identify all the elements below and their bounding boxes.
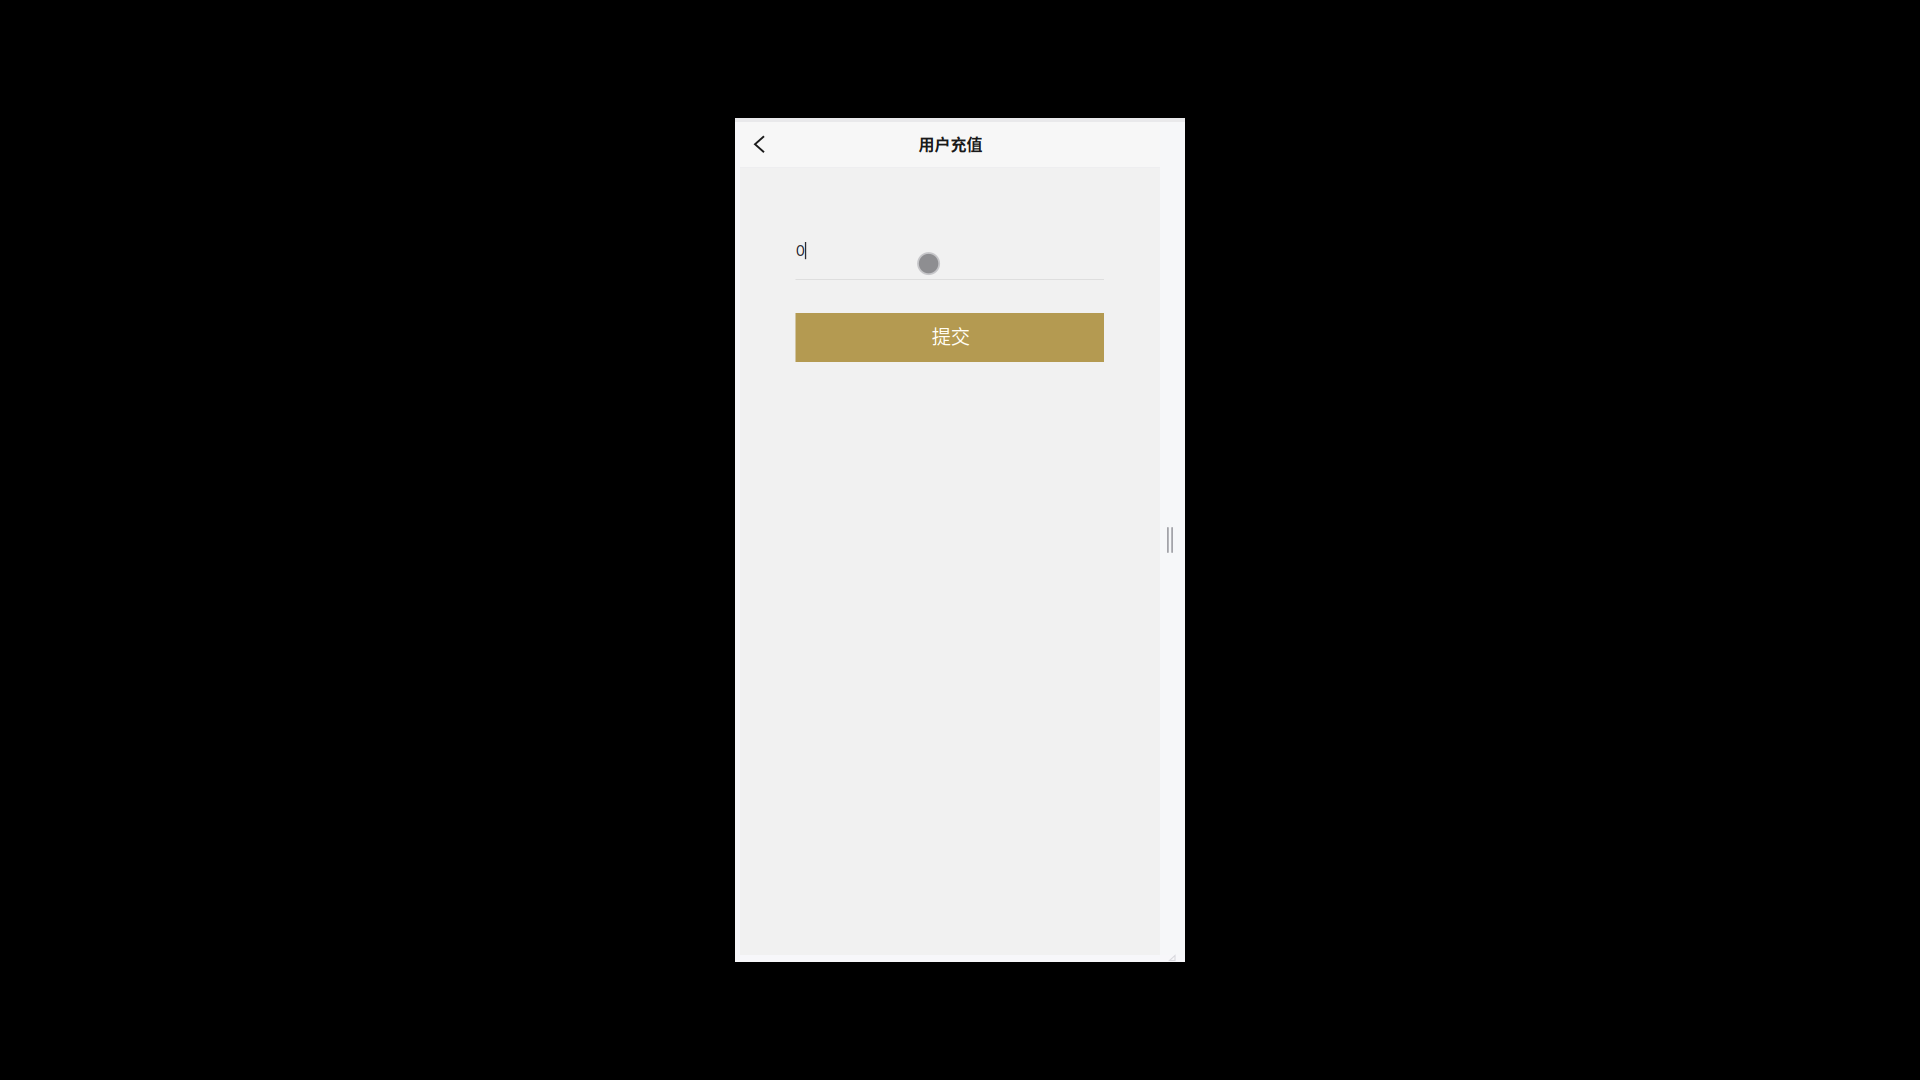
staticText: 用户充值 bbox=[918, 132, 982, 155]
staticText: 提交 bbox=[932, 321, 970, 349]
button[interactable]: 提交 bbox=[795, 313, 1104, 362]
staticText: 0 bbox=[796, 242, 805, 259]
button[interactable]: Back bbox=[742, 119, 776, 169]
button[interactable]: Amount bbox=[795, 236, 1104, 280]
